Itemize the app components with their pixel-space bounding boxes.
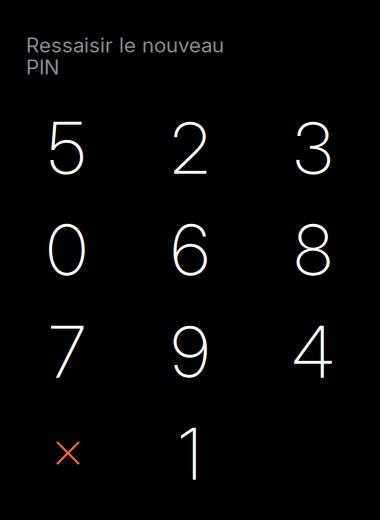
button[interactable]: 3 (258, 102, 368, 194)
staticText: 0 (46, 207, 87, 293)
button[interactable]: 5 (12, 102, 122, 194)
staticText: Ressaisir le nouveau (26, 33, 224, 57)
staticText: 9 (171, 309, 209, 395)
staticText: 1 (178, 411, 201, 497)
staticText: 2 (171, 105, 209, 191)
button[interactable]: 7 (12, 306, 122, 398)
button[interactable]: 4 (258, 306, 368, 398)
button[interactable]: 9 (135, 306, 245, 398)
staticText: 5 (48, 105, 86, 191)
button[interactable]: 0 (12, 204, 122, 296)
button[interactable]: 8 (258, 204, 368, 296)
staticText: 4 (292, 309, 334, 395)
staticText: 3 (293, 105, 332, 191)
staticText: 8 (294, 207, 332, 293)
button[interactable]: 2 (135, 102, 245, 194)
button[interactable]: 6 (135, 204, 245, 296)
button[interactable]: Delete (12, 408, 122, 500)
staticText: 6 (171, 207, 209, 293)
button[interactable]: 1 (135, 408, 245, 500)
staticText: PIN (26, 55, 59, 79)
staticText: 7 (49, 309, 85, 395)
